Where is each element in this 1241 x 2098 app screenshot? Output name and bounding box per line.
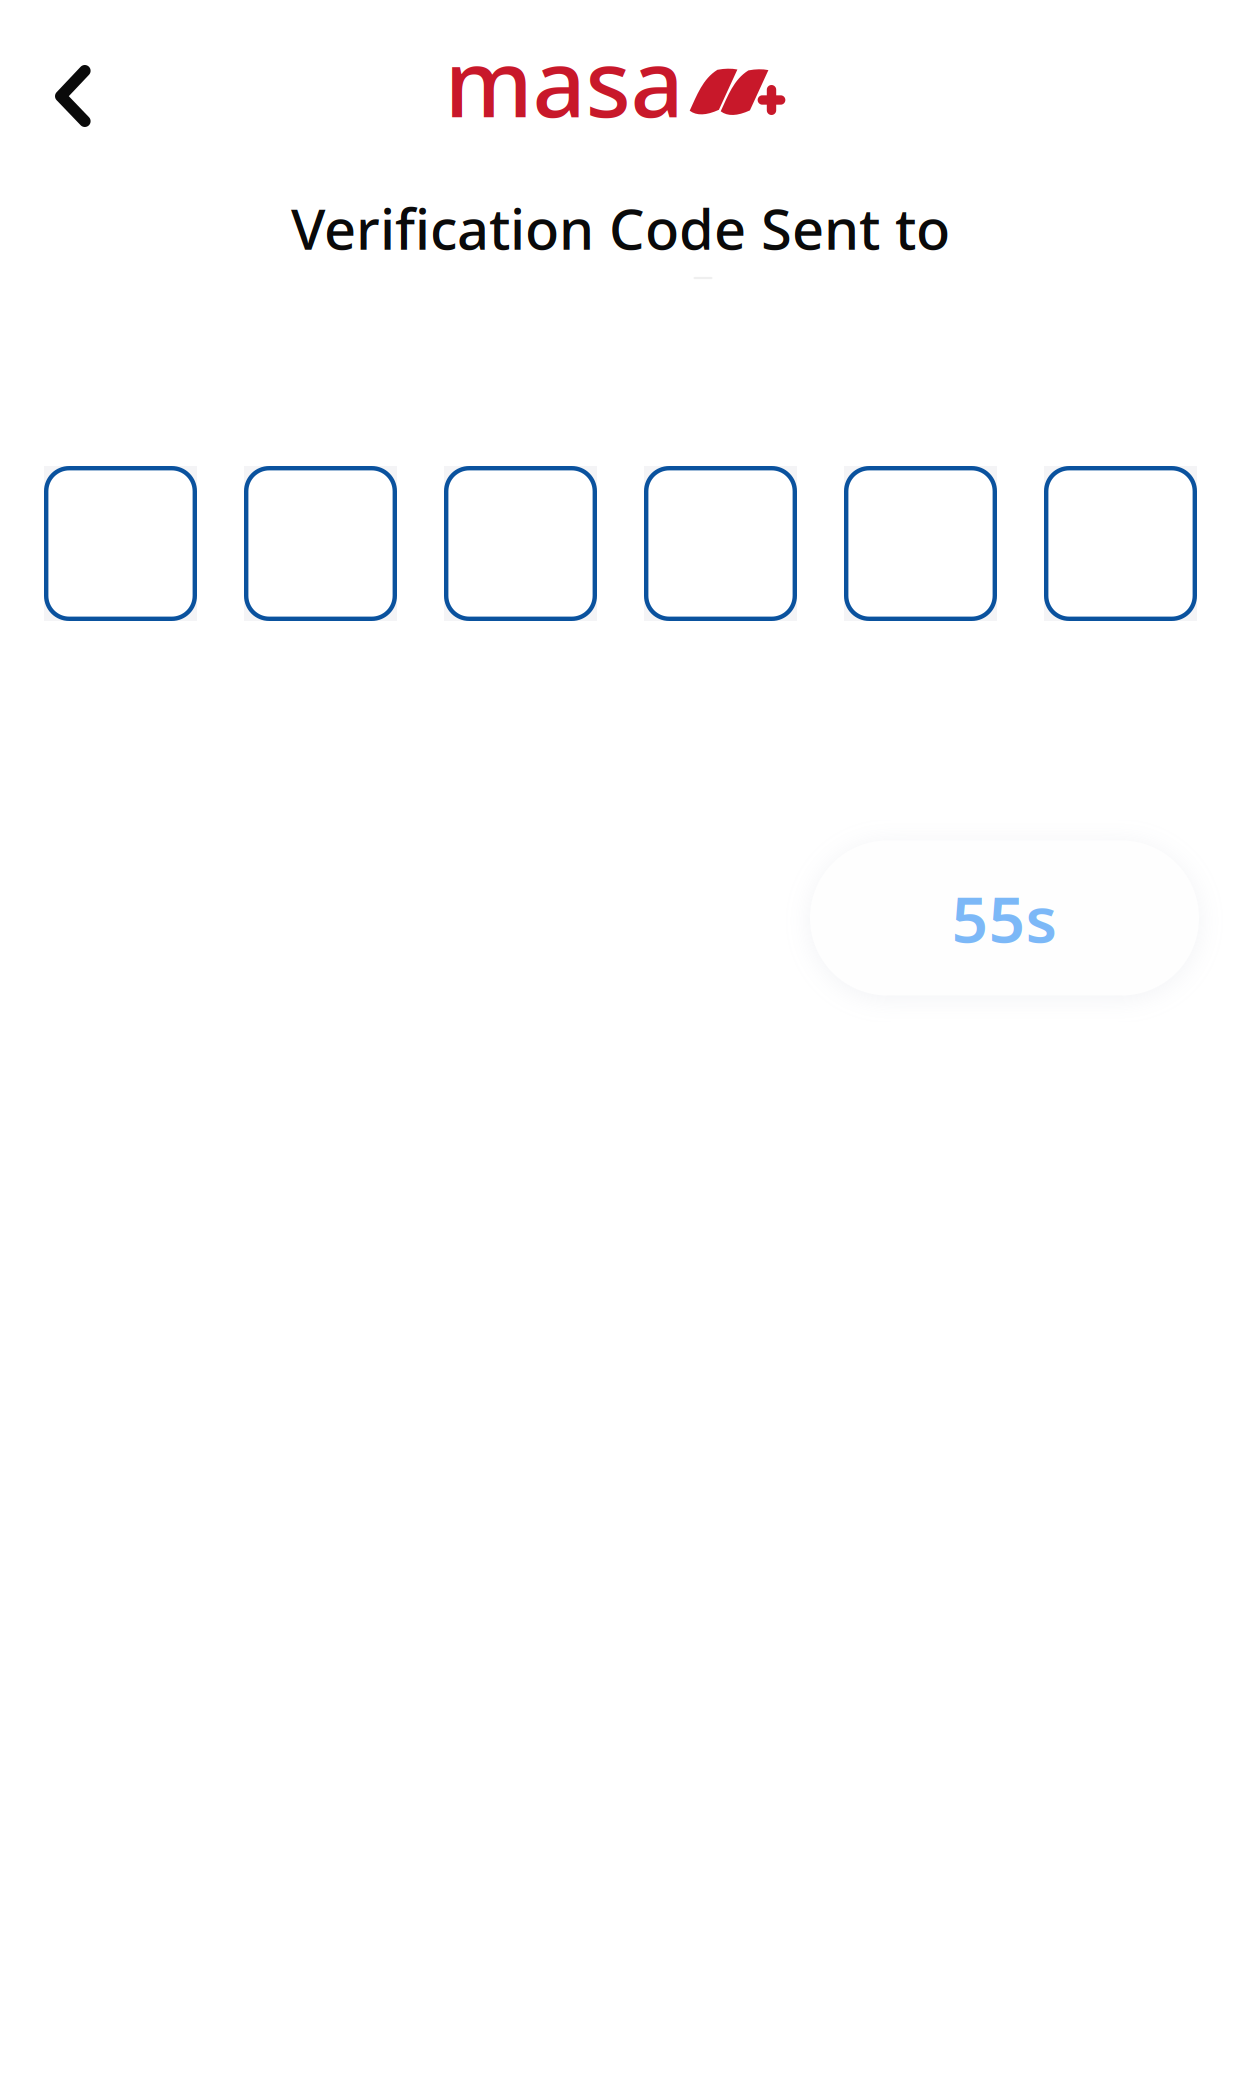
staticText: Verification Code Sent to [291, 191, 950, 265]
staticText: masa [444, 19, 683, 143]
button[interactable]: Back [17, 29, 134, 162]
button[interactable]: 55s [810, 840, 1199, 995]
staticText: 55s [951, 875, 1057, 960]
